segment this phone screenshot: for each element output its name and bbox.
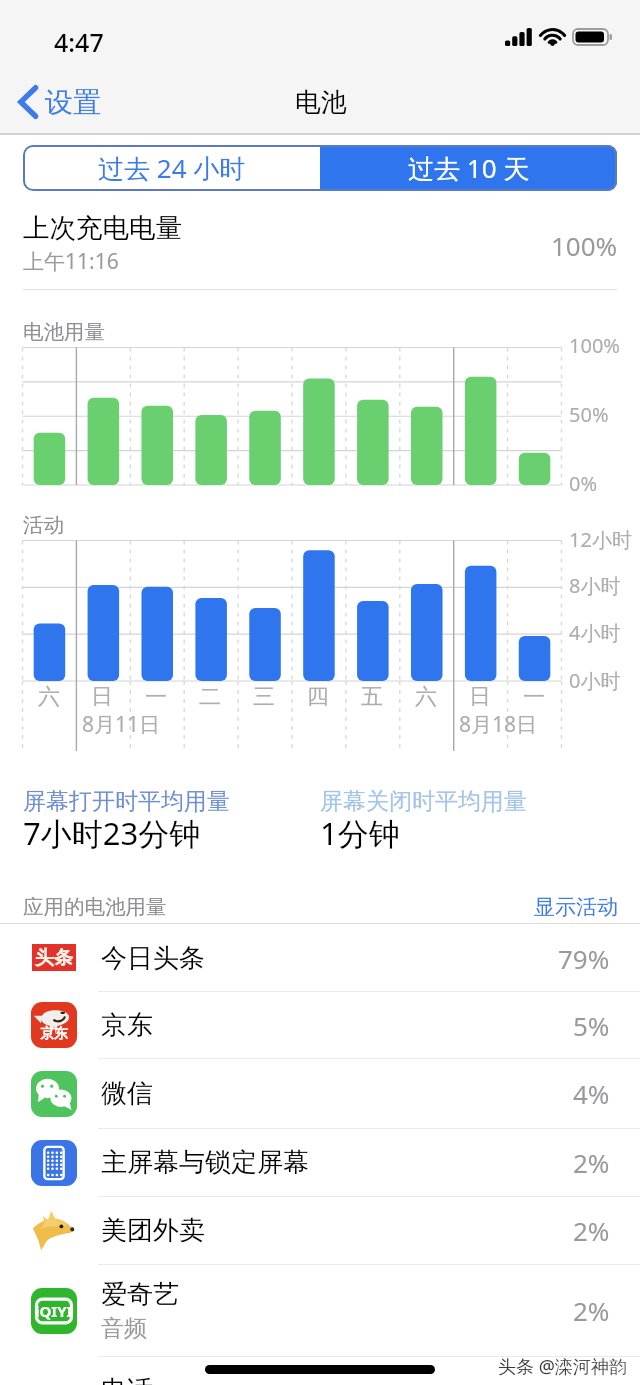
staticText: 美团外卖	[101, 1214, 205, 1247]
staticText: 头条	[35, 946, 73, 970]
staticText: 屏幕关闭时平均用量	[320, 787, 527, 816]
staticText: 电池	[295, 86, 347, 119]
staticText: 六	[415, 683, 437, 711]
staticText: 活动	[23, 512, 64, 538]
staticText: 12小时	[569, 526, 632, 553]
staticText: iQIYI	[35, 1301, 73, 1321]
staticText: 8月18日	[459, 710, 538, 739]
staticText: 六	[38, 683, 60, 711]
button[interactable]: 美团外卖	[0, 1197, 640, 1264]
staticText: 京东	[101, 1009, 153, 1042]
button[interactable]: 电话	[0, 1357, 640, 1385]
staticText: 1分钟	[320, 812, 400, 854]
staticText: 上午11:16	[23, 247, 119, 276]
staticText: 0%	[569, 470, 598, 497]
staticText: 京东	[40, 1025, 68, 1043]
staticText: 8月11日	[82, 710, 161, 739]
button[interactable]: iQIYI	[0, 1265, 640, 1356]
staticText: 4%	[573, 1076, 610, 1111]
staticText: 音频	[101, 1314, 147, 1343]
staticText: 过去 24 小时	[98, 150, 246, 186]
staticText: 100%	[569, 332, 620, 359]
staticText: 应用的电池用量	[23, 894, 167, 920]
staticText: 过去 10 天	[408, 150, 530, 186]
staticText: 79%	[558, 941, 610, 976]
staticText: 三	[253, 683, 275, 711]
button[interactable]: 主屏幕与锁定屏幕	[0, 1129, 640, 1196]
staticText: 屏幕打开时平均用量	[23, 787, 230, 816]
staticText: 一	[523, 683, 545, 711]
staticText: 2%	[573, 1145, 610, 1180]
staticText: 显示活动	[534, 894, 618, 920]
staticText: 4:47	[54, 25, 104, 59]
staticText: 5%	[573, 1008, 610, 1043]
staticText: 主屏幕与锁定屏幕	[101, 1146, 309, 1179]
staticText: 五	[361, 683, 383, 711]
staticText: 50%	[569, 401, 609, 428]
staticText: 设置	[45, 85, 101, 120]
button[interactable]: 设置	[10, 80, 111, 124]
staticText: 头条 @滦河神韵	[498, 1354, 627, 1379]
staticText: 日	[469, 683, 491, 711]
staticText: 电话	[101, 1374, 153, 1385]
staticText: 上次充电电量	[23, 211, 182, 244]
button[interactable]: 京东	[0, 992, 640, 1058]
staticText: 一	[145, 683, 167, 711]
button[interactable]: 头条	[0, 925, 640, 991]
staticText: 日	[91, 683, 113, 711]
staticText: 今日头条	[101, 942, 205, 975]
button[interactable]: 微信	[0, 1059, 640, 1128]
staticText: 电池用量	[23, 319, 105, 345]
staticText: 四	[307, 683, 329, 711]
button[interactable]: 显示活动	[524, 884, 628, 930]
staticText: 二	[199, 683, 221, 711]
staticText: 2%	[573, 1213, 610, 1248]
staticText: 100%	[551, 228, 618, 263]
staticText: 2%	[573, 1293, 610, 1328]
staticText: 微信	[101, 1077, 153, 1110]
staticText: 7小时23分钟	[23, 812, 201, 854]
staticText: 4小时	[569, 619, 621, 646]
button[interactable]: 过去 10 天	[320, 145, 617, 191]
staticText: 8小时	[569, 572, 621, 599]
staticText: 0小时	[569, 667, 621, 694]
button[interactable]: 过去 24 小时	[23, 145, 320, 191]
staticText: 爱奇艺	[101, 1278, 179, 1311]
